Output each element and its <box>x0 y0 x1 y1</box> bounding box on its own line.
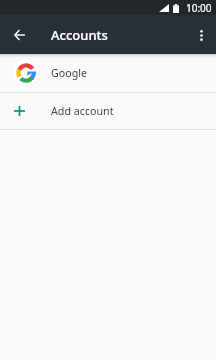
button[interactable]: Back <box>0 16 38 54</box>
staticText: Accounts <box>51 26 108 44</box>
button[interactable]: Add account <box>0 93 216 129</box>
button[interactable]: Google <box>0 54 216 92</box>
staticText: 10:00 <box>186 1 212 15</box>
staticText: Add account <box>51 104 114 119</box>
button[interactable]: More options <box>186 20 216 50</box>
staticText: Google <box>51 66 88 81</box>
